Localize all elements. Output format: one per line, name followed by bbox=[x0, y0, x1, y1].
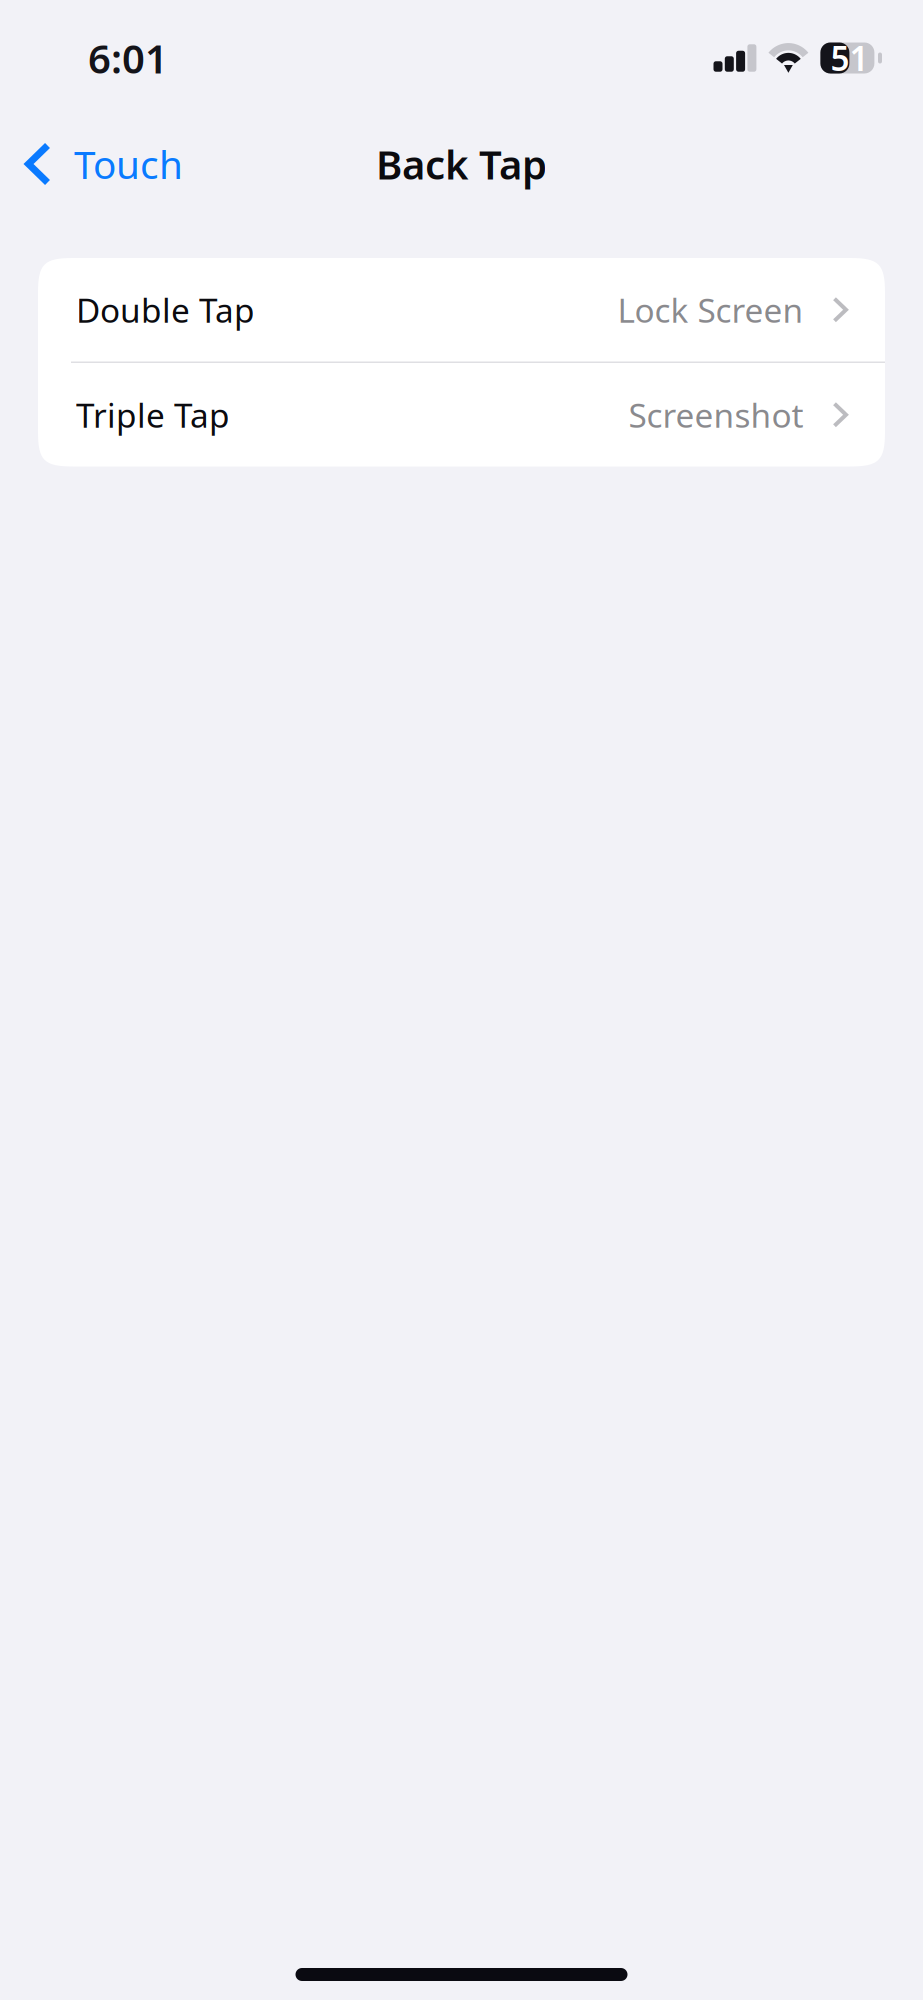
staticText: Triple Tap bbox=[76, 393, 230, 437]
staticText: Screenshot bbox=[628, 393, 803, 437]
staticText: Double Tap bbox=[76, 288, 255, 332]
button[interactable]: Triple Tap bbox=[38, 363, 885, 466]
staticText: 51 bbox=[830, 36, 868, 80]
staticText: Touch bbox=[74, 138, 183, 190]
staticText: 6:01 bbox=[88, 31, 168, 84]
staticText: Lock Screen bbox=[617, 288, 803, 332]
button[interactable]: Back to Touch bbox=[0, 128, 201, 200]
staticText: Back Tap bbox=[376, 137, 547, 190]
button[interactable]: Double Tap bbox=[38, 258, 885, 361]
